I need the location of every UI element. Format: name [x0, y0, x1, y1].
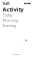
staticText: Morning	[2, 17, 17, 23]
button[interactable]: Status	[25, 39, 27, 41]
staticText: Evening	[2, 23, 15, 28]
button[interactable]: Morning	[2, 19, 30, 22]
staticText: 9:41	[2, 1, 9, 6]
staticText: Activity	[2, 6, 23, 13]
button[interactable]: Evening	[2, 24, 30, 27]
staticText: Today	[2, 12, 12, 18]
button[interactable]: Today	[2, 13, 30, 16]
